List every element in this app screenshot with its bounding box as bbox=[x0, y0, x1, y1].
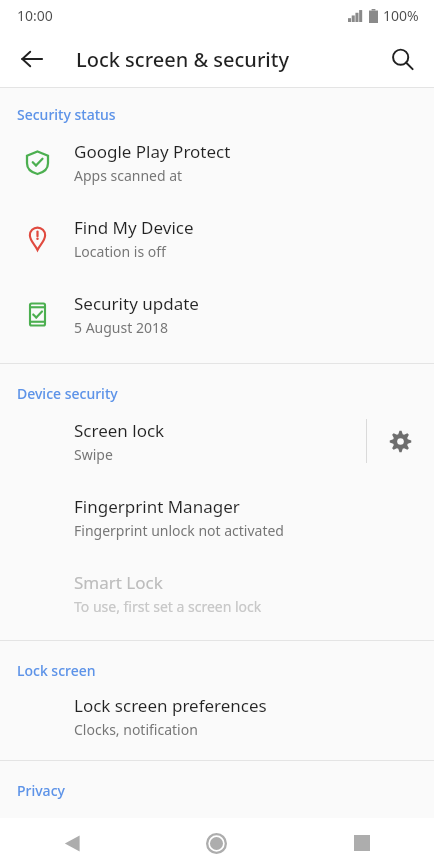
staticText: Device security bbox=[17, 384, 118, 403]
staticText: Security update bbox=[74, 292, 199, 315]
staticText: Swipe bbox=[74, 445, 113, 464]
staticText: Lock screen & security bbox=[76, 46, 289, 73]
button[interactable]: Security update bbox=[0, 276, 434, 352]
staticText: Location is off bbox=[74, 242, 166, 261]
button[interactable]: Search bbox=[378, 35, 426, 83]
button[interactable]: Back bbox=[0, 818, 144, 868]
button[interactable]: Find My Device bbox=[0, 200, 434, 276]
staticText: Apps scanned at bbox=[74, 166, 183, 185]
staticText: Security status bbox=[17, 105, 116, 124]
button[interactable]: Lock screen preferences bbox=[0, 680, 434, 752]
button[interactable]: Back bbox=[8, 35, 56, 83]
staticText: Find My Device bbox=[74, 216, 194, 239]
staticText: Smart Lock bbox=[74, 571, 163, 594]
button[interactable]: Screen lock settings bbox=[367, 403, 434, 479]
button[interactable]: Fingerprint Manager bbox=[0, 479, 434, 555]
button[interactable]: Home bbox=[144, 818, 289, 868]
staticText: Privacy bbox=[17, 781, 65, 800]
button[interactable]: Recent apps bbox=[289, 818, 434, 868]
button[interactable]: Screen lock bbox=[0, 403, 366, 479]
staticText: 100% bbox=[383, 6, 419, 25]
staticText: 5 August 2018 bbox=[74, 318, 168, 337]
staticText: 10:00 bbox=[17, 6, 53, 25]
staticText: Lock screen bbox=[17, 661, 96, 680]
button[interactable]: Smart Lock bbox=[0, 555, 434, 631]
staticText: Fingerprint Manager bbox=[74, 495, 240, 518]
staticText: Fingerprint unlock not activated bbox=[74, 521, 284, 540]
staticText: Google Play Protect bbox=[74, 140, 231, 163]
staticText: Lock screen preferences bbox=[74, 694, 267, 717]
staticText: Clocks, notification bbox=[74, 720, 198, 739]
button[interactable]: Google Play Protect bbox=[0, 124, 434, 200]
staticText: To use, first set a screen lock bbox=[74, 597, 262, 616]
staticText: Screen lock bbox=[74, 419, 165, 442]
